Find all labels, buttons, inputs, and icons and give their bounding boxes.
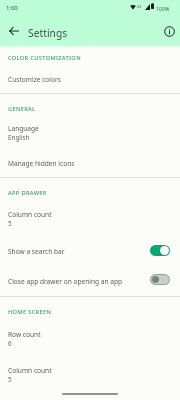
staticText: Customize colors bbox=[8, 75, 61, 84]
staticText: Column count bbox=[8, 366, 52, 375]
button[interactable] bbox=[0, 326, 180, 350]
staticText: Column count bbox=[8, 210, 52, 219]
staticText: HOME SCREEN bbox=[8, 308, 52, 316]
staticText: Language bbox=[8, 124, 39, 133]
staticText: Close app drawer on opening an app bbox=[8, 277, 123, 286]
staticText: COLOR CUSTOMIZATION bbox=[8, 54, 81, 62]
button[interactable]: Info bbox=[160, 22, 178, 40]
button[interactable] bbox=[0, 154, 180, 176]
button[interactable] bbox=[0, 240, 180, 267]
staticText: GENERAL bbox=[8, 105, 36, 113]
button[interactable] bbox=[0, 270, 180, 297]
button[interactable]: Toggle on bbox=[150, 245, 170, 256]
staticText: English bbox=[8, 133, 30, 142]
button[interactable] bbox=[0, 206, 180, 230]
staticText: 5 bbox=[8, 219, 12, 228]
staticText: 43 bbox=[137, 4, 142, 9]
button[interactable]: Back bbox=[5, 22, 23, 40]
staticText: 1:00 bbox=[6, 4, 18, 12]
staticText: 6 bbox=[8, 339, 12, 348]
staticText: Show a search bar bbox=[8, 247, 65, 256]
button[interactable] bbox=[0, 120, 180, 144]
button[interactable] bbox=[0, 362, 180, 386]
button[interactable]: Toggle off bbox=[150, 274, 170, 285]
staticText: 5 bbox=[8, 375, 12, 384]
staticText: APP DRAWER bbox=[8, 189, 47, 197]
staticText: Settings bbox=[28, 26, 68, 40]
staticText: Manage hidden icons bbox=[8, 159, 75, 168]
staticText: Row count bbox=[8, 330, 41, 339]
button[interactable] bbox=[0, 70, 180, 92]
staticText: 100% bbox=[156, 5, 170, 12]
